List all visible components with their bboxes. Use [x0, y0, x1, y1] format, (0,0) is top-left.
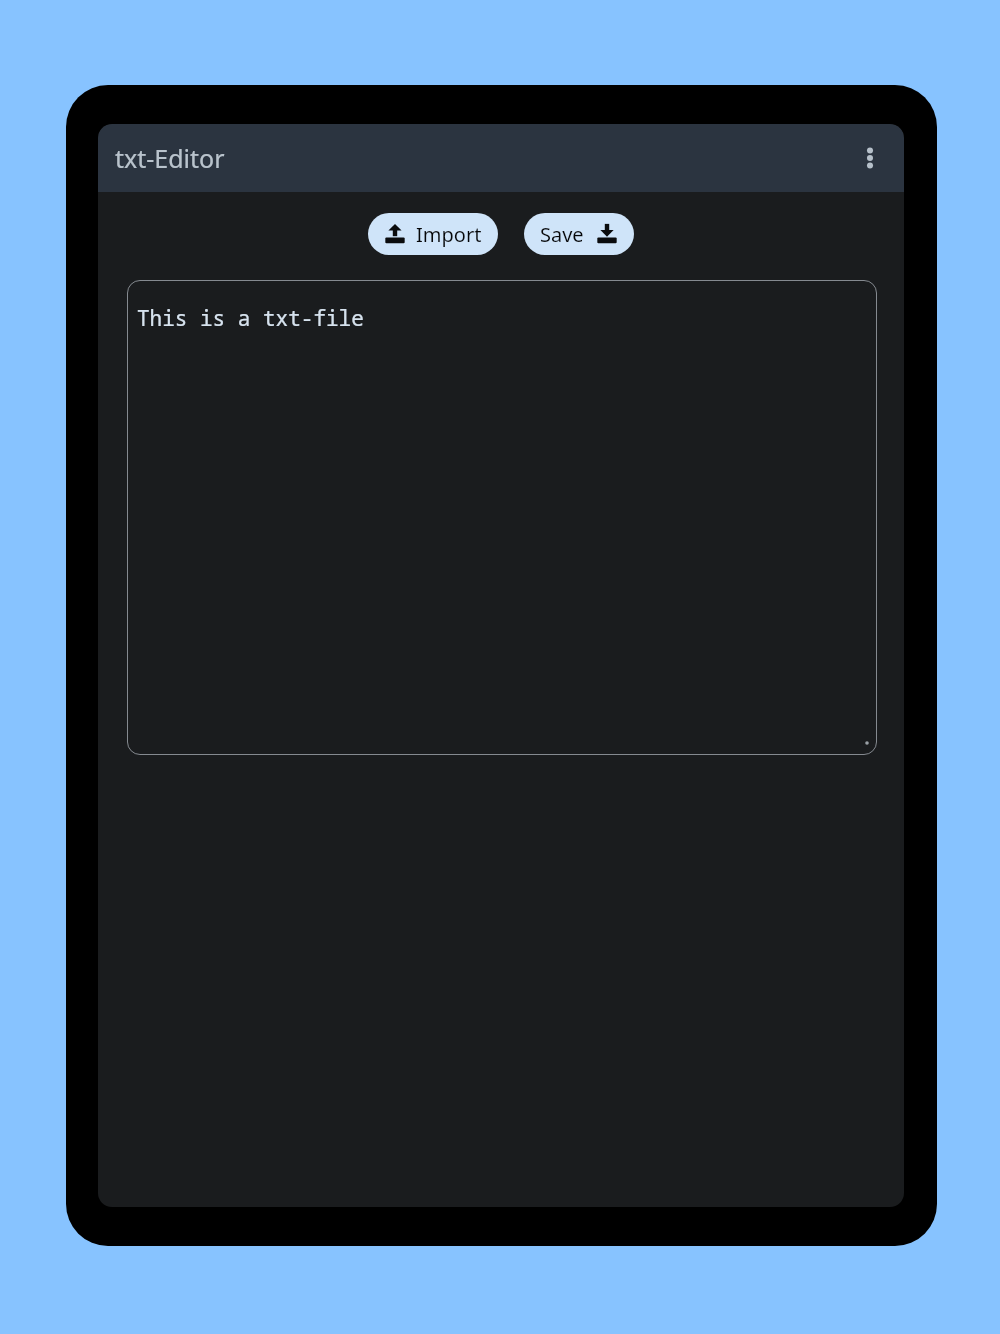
other: Save file [596, 223, 618, 245]
staticText: txt-Editor [115, 141, 225, 175]
button[interactable]: Import file [368, 213, 498, 255]
button[interactable]: More options [846, 134, 894, 182]
staticText: This is a txt-file [137, 304, 364, 333]
button[interactable]: This is a txt-file [127, 280, 877, 755]
button[interactable]: Save [524, 213, 634, 255]
staticText: Save [540, 221, 584, 248]
staticText: Import [416, 221, 482, 248]
other: Import file [384, 223, 406, 245]
